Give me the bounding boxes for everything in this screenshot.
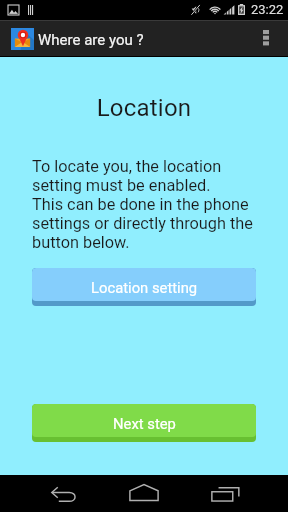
button[interactable]: Back [32, 475, 96, 512]
button[interactable]: Next step [32, 404, 256, 442]
staticText: Next step [113, 415, 176, 432]
staticText: Location setting [91, 279, 198, 296]
staticText: Location [0, 94, 288, 122]
staticText: Where are you ? [38, 31, 144, 49]
button[interactable]: Recents [193, 475, 257, 512]
button[interactable]: Home [112, 475, 176, 512]
staticText: To locate you, the location setting must… [32, 157, 280, 252]
button[interactable]: More options [252, 20, 288, 56]
button[interactable]: Location setting [32, 268, 256, 306]
staticText: 23:22 [251, 2, 284, 17]
